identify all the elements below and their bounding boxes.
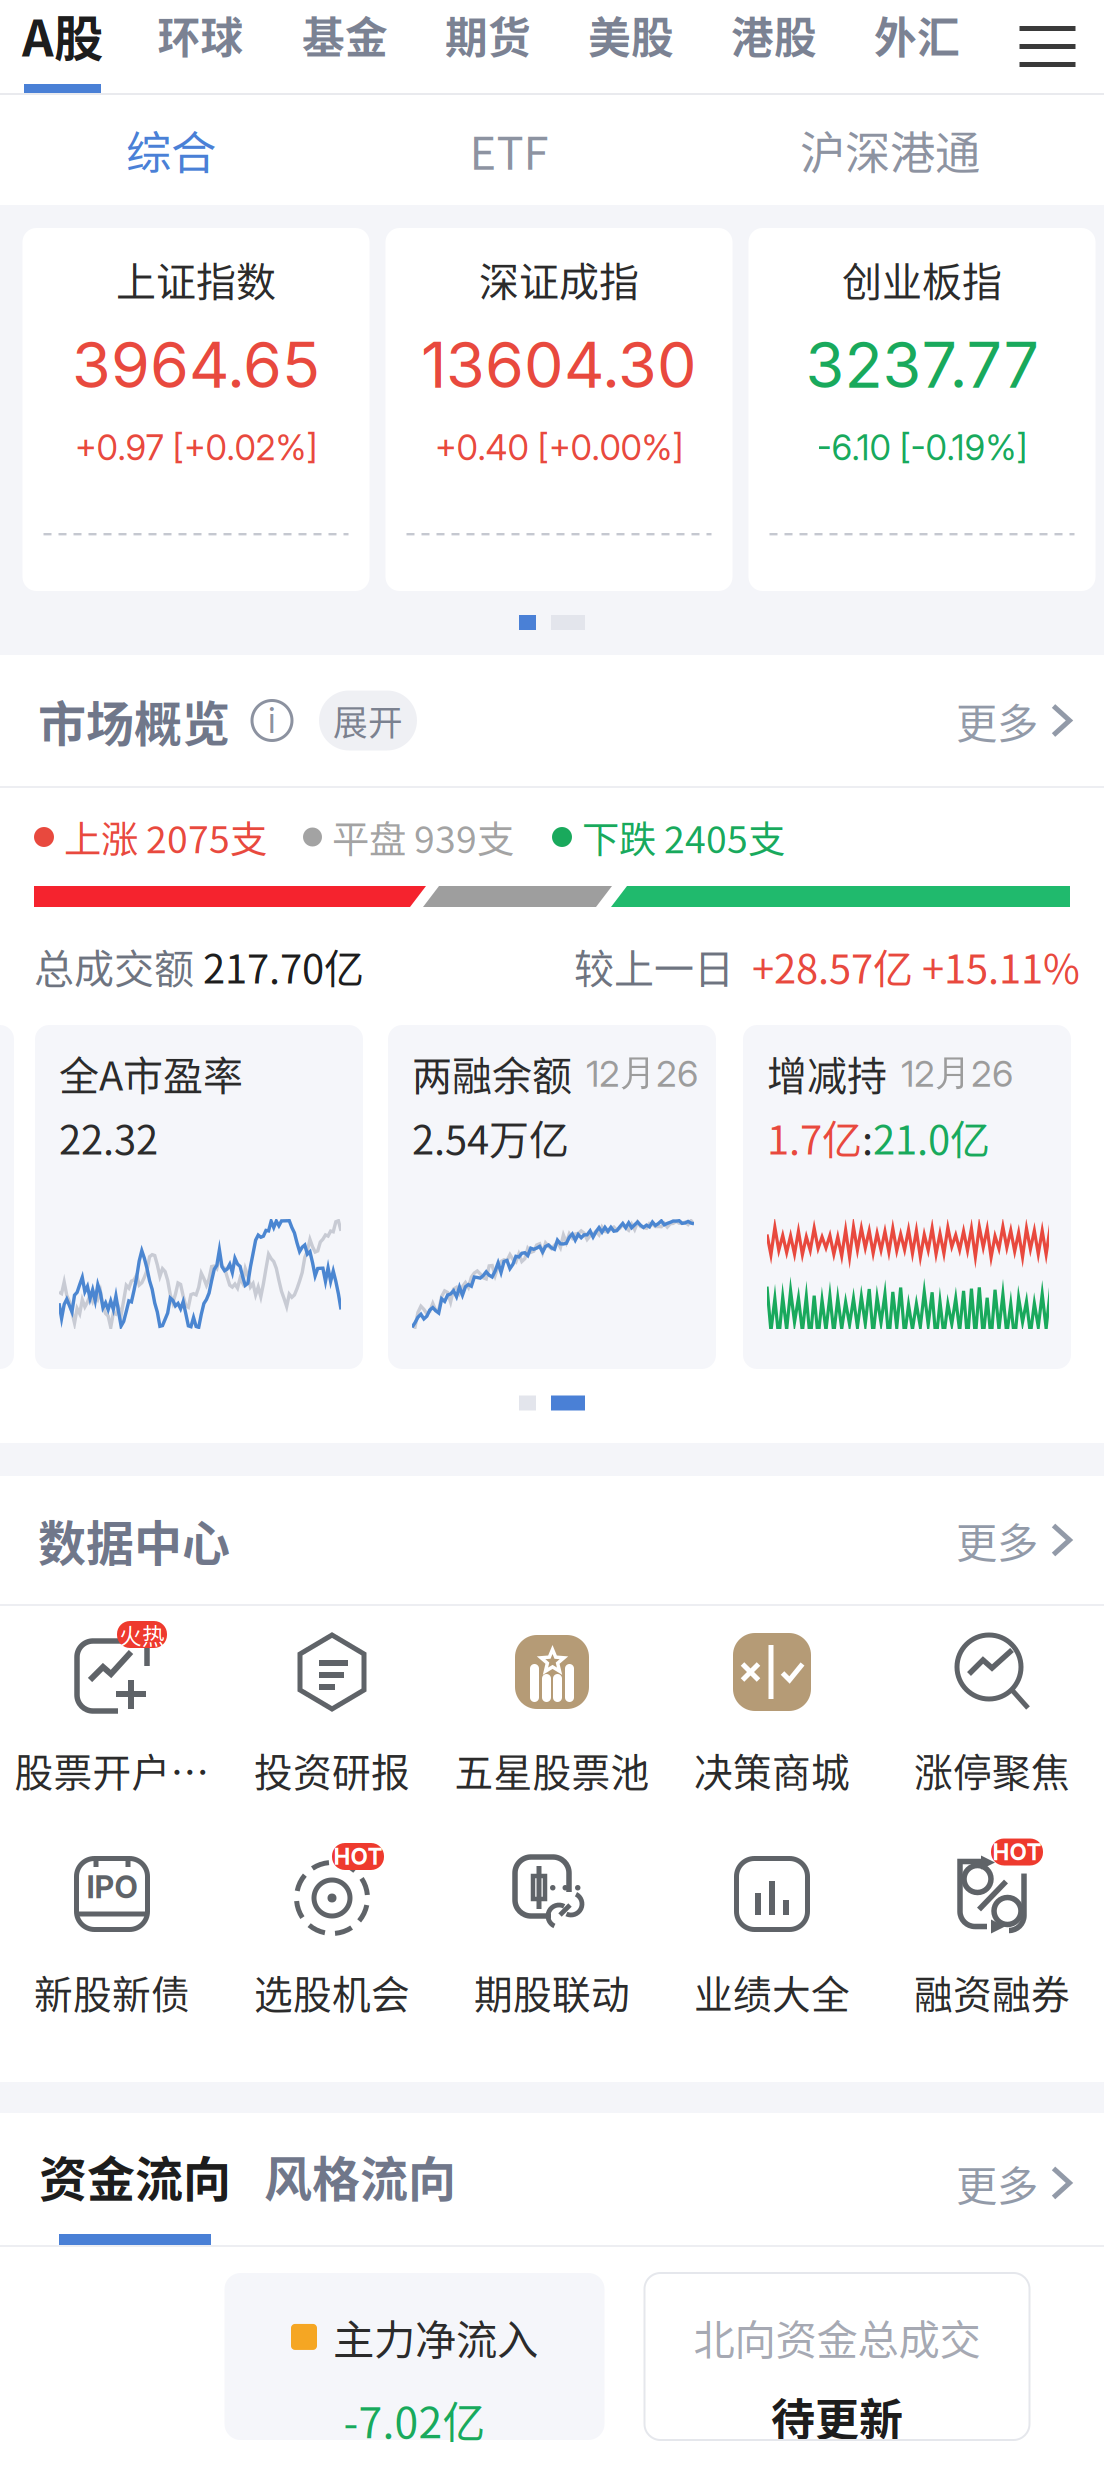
staticText: 下跌 2405支 xyxy=(582,810,785,864)
staticText: 12月26 xyxy=(901,1050,1013,1096)
button[interactable]: 更多 xyxy=(956,2139,1072,2227)
staticText: -7.02亿 xyxy=(343,2389,485,2451)
button[interactable]: 深证成指 xyxy=(385,228,732,591)
staticText: 增减持 xyxy=(767,1044,887,1102)
staticText: 展开 xyxy=(333,695,403,746)
staticText: HOT xyxy=(992,1838,1041,1866)
staticText: ETF xyxy=(469,117,548,183)
staticText: HOT xyxy=(333,1843,382,1870)
staticText: 综合 xyxy=(126,117,216,183)
staticText: 待更新 xyxy=(771,2385,903,2449)
button[interactable]: A股 xyxy=(0,0,127,93)
staticText: 涨停聚焦 xyxy=(914,1742,1070,1798)
button[interactable]: 创业板指 xyxy=(748,228,1095,591)
staticText: 融资融券 xyxy=(914,1964,1070,2020)
button[interactable]: 沪深港通 xyxy=(676,95,1104,205)
staticText: 期货 xyxy=(445,4,531,66)
button[interactable]: 展开 xyxy=(319,690,417,750)
button[interactable]: 菜单 xyxy=(988,0,1104,93)
staticText: 业绩大全 xyxy=(694,1964,850,2020)
button[interactable]: HOT xyxy=(882,1828,1102,2050)
button[interactable]: 决策商城 xyxy=(662,1606,882,1828)
staticText: 投资研报 xyxy=(254,1742,410,1798)
staticText: 总成交额 xyxy=(34,937,194,995)
staticText: 市场概览 xyxy=(38,686,230,755)
button[interactable]: 美股 xyxy=(559,0,702,93)
button[interactable]: 期股联动 xyxy=(442,1828,662,2050)
button[interactable]: 外汇 xyxy=(845,0,988,93)
staticText: 五星股票池 xyxy=(454,1742,649,1798)
staticText: 主力净流入 xyxy=(333,2307,538,2367)
staticText: 数据中心 xyxy=(38,1505,230,1575)
staticText: 全A市盈率 xyxy=(59,1044,243,1102)
button[interactable]: ETF xyxy=(342,95,676,205)
button[interactable]: 两融余额 xyxy=(388,1025,716,1369)
staticText: 两融余额 xyxy=(412,1044,572,1102)
staticText: 选股机会 xyxy=(254,1964,410,2020)
staticText: 环球 xyxy=(157,4,243,66)
button[interactable]: 港股 xyxy=(702,0,845,93)
staticText: 上证指数 xyxy=(116,250,276,308)
staticText: 沪深港通 xyxy=(800,117,980,183)
button[interactable]: 火热 xyxy=(2,1606,222,1828)
staticText: 1.7亿 xyxy=(767,1108,862,1166)
button[interactable]: 北向资金总成交 xyxy=(644,2273,1029,2440)
staticText: 较上一日 xyxy=(574,937,734,995)
staticText: +0.97 [+0.02%] xyxy=(74,427,317,469)
button[interactable]: 上证指数 xyxy=(22,228,369,591)
staticText: -6.10 [-0.19%] xyxy=(816,427,1027,469)
staticText: 平盘 939支 xyxy=(332,810,514,864)
staticText: A股 xyxy=(22,0,103,71)
button[interactable]: 业绩大全 xyxy=(662,1828,882,2050)
staticText: 决策商城 xyxy=(694,1742,850,1798)
staticText: 21.0亿 xyxy=(873,1108,990,1166)
staticText: : xyxy=(862,1108,873,1166)
staticText: 火热 xyxy=(119,1618,165,1651)
staticText: +0.40 [+0.00%] xyxy=(434,427,683,469)
button[interactable]: 全A市盈率 xyxy=(35,1025,363,1369)
staticText: 更多 xyxy=(956,691,1038,750)
staticText: 深证成指 xyxy=(479,250,639,308)
button[interactable]: HOT xyxy=(222,1828,442,2050)
staticText: 上涨 2075支 xyxy=(64,810,267,864)
staticText: 2.54万亿 xyxy=(412,1108,569,1166)
button[interactable]: IPO xyxy=(2,1828,222,2050)
staticText: 3964.65 xyxy=(72,327,320,403)
staticText: 3237.77 xyxy=(805,327,1038,403)
staticText: 期股联动 xyxy=(474,1964,630,2020)
button[interactable]: 五星股票池 xyxy=(442,1606,662,1828)
button[interactable]: 增减持 xyxy=(743,1025,1071,1369)
staticText: 风格流向 xyxy=(264,2141,456,2210)
staticText: 更多 xyxy=(956,2153,1038,2213)
staticText: i xyxy=(268,699,276,741)
staticText: 13604.30 xyxy=(421,327,697,403)
button[interactable]: 更多 xyxy=(956,677,1072,764)
staticText: 创业板指 xyxy=(842,250,1002,308)
button[interactable]: 环球 xyxy=(127,0,273,93)
button[interactable]: 综合 xyxy=(0,95,342,205)
button[interactable]: 更多 xyxy=(956,1496,1072,1584)
staticText: 12月26 xyxy=(586,1050,698,1096)
button[interactable]: 期货 xyxy=(416,0,559,93)
button[interactable]: 主力净流入 xyxy=(224,2273,604,2440)
staticText: 股票开户… xyxy=(14,1742,209,1798)
staticText: 22.32 xyxy=(59,1108,158,1166)
button[interactable]: 涨停聚焦 xyxy=(882,1606,1102,1828)
staticText: +28.57亿 +15.11% xyxy=(734,937,1080,995)
staticText: 港股 xyxy=(731,4,817,66)
staticText: 更多 xyxy=(956,1510,1038,1570)
staticText: 资金流向 xyxy=(39,2141,231,2210)
staticText: 北向资金总成交 xyxy=(693,2307,980,2367)
staticText: 基金 xyxy=(302,4,388,66)
staticText: 新股新债 xyxy=(34,1964,190,2020)
staticText: 美股 xyxy=(588,4,674,66)
staticText: 外汇 xyxy=(874,4,960,66)
staticText: 217.70亿 xyxy=(194,937,364,995)
staticText: IPO xyxy=(86,1868,137,1905)
button[interactable]: 投资研报 xyxy=(222,1606,442,1828)
button[interactable]: 基金 xyxy=(273,0,416,93)
